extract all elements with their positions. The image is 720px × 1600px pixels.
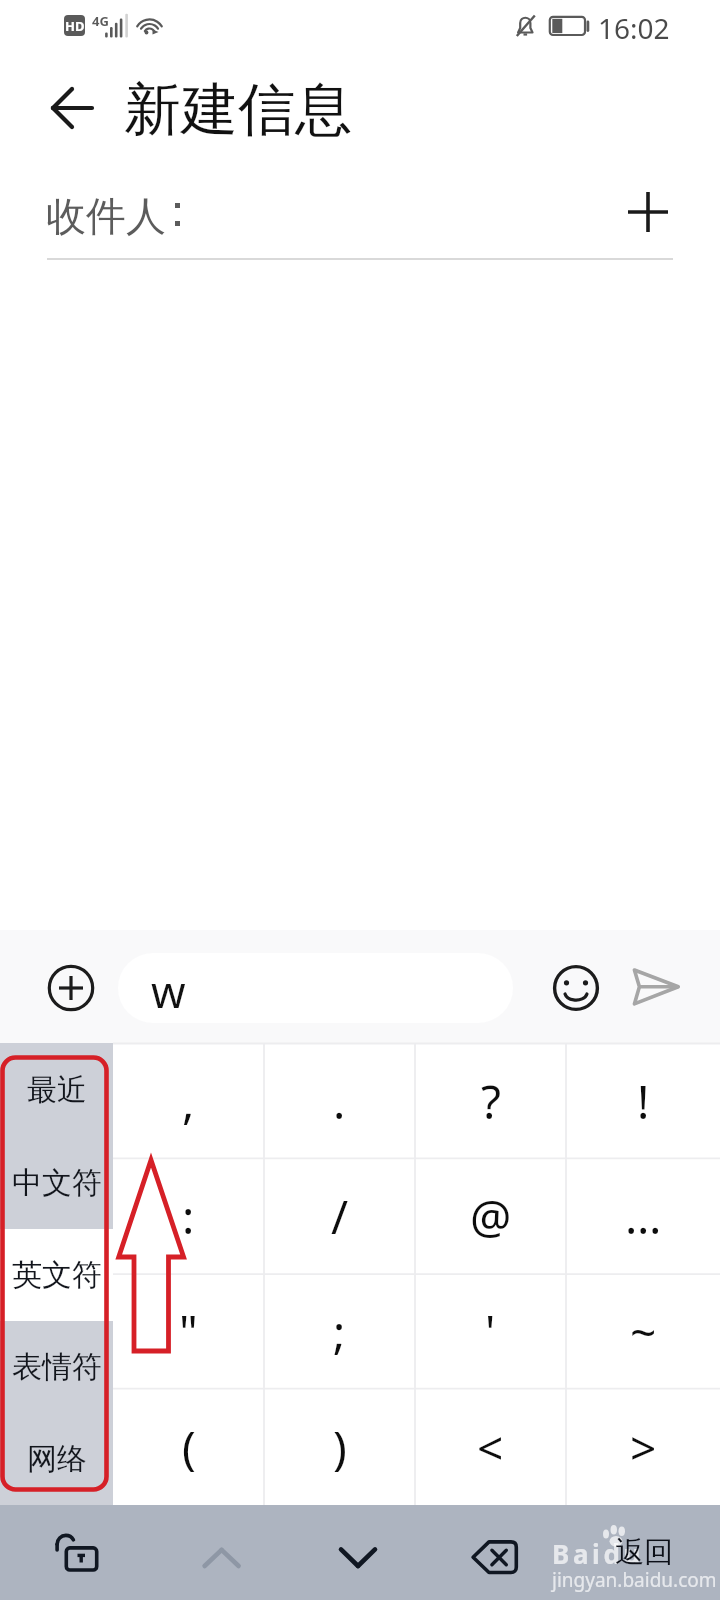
button[interactable]: 英文符 bbox=[0, 1229, 113, 1321]
button[interactable]: 最近 bbox=[0, 1043, 113, 1136]
staticText: jingyan.baidu.com bbox=[552, 1567, 717, 1593]
button[interactable]: @ bbox=[415, 1158, 566, 1274]
staticText: 英文符 bbox=[12, 1256, 102, 1294]
staticText: Baidu bbox=[552, 1536, 644, 1571]
staticText: , bbox=[182, 1070, 195, 1133]
staticText: . bbox=[333, 1070, 346, 1133]
staticText: 返回 bbox=[615, 1534, 673, 1571]
staticText: HD bbox=[65, 17, 85, 35]
staticText: 16:02 bbox=[598, 9, 670, 47]
button[interactable]: ! bbox=[566, 1044, 720, 1159]
staticText: … bbox=[625, 1185, 662, 1248]
button[interactable]: Back bbox=[24, 76, 88, 140]
button[interactable]: Send bbox=[628, 964, 684, 1006]
staticText: > bbox=[630, 1416, 657, 1479]
staticText: ; bbox=[333, 1300, 346, 1363]
staticText: ~ bbox=[630, 1300, 657, 1363]
staticText: ) bbox=[333, 1416, 347, 1479]
staticText: 4G bbox=[92, 12, 109, 30]
button[interactable]: Unlock bbox=[37, 1510, 117, 1590]
button[interactable]: 网络 bbox=[0, 1413, 113, 1505]
staticText: / bbox=[331, 1185, 349, 1248]
button[interactable]: Add recipient bbox=[608, 172, 688, 252]
button[interactable]: 表情符 bbox=[0, 1321, 113, 1413]
button[interactable]: Emoji bbox=[549, 961, 603, 1015]
staticText: ? bbox=[481, 1070, 501, 1133]
button[interactable]: < bbox=[415, 1389, 566, 1505]
button[interactable]: … bbox=[566, 1158, 720, 1274]
staticText: < bbox=[477, 1416, 504, 1479]
button[interactable]: Delete bbox=[455, 1510, 535, 1590]
button[interactable]: ; bbox=[264, 1274, 415, 1388]
staticText: 新建信息 bbox=[124, 74, 352, 146]
button[interactable]: 返回 bbox=[614, 1533, 674, 1571]
staticText: ( bbox=[182, 1416, 196, 1479]
button[interactable]: : bbox=[113, 1158, 264, 1274]
button[interactable]: ) bbox=[264, 1389, 415, 1505]
button[interactable]: ? bbox=[415, 1044, 566, 1159]
button[interactable]: ' bbox=[415, 1274, 566, 1388]
button[interactable]: , bbox=[113, 1044, 264, 1159]
button[interactable]: / bbox=[264, 1158, 415, 1274]
button[interactable]: 收件人 bbox=[0, 170, 720, 260]
staticText: 表情符 bbox=[12, 1348, 102, 1386]
button[interactable]: Add attachment bbox=[40, 957, 102, 1019]
staticText: : bbox=[182, 1185, 195, 1248]
staticText: ! bbox=[637, 1070, 650, 1133]
button[interactable]: w bbox=[118, 953, 513, 1023]
staticText: 收件人 bbox=[46, 191, 166, 241]
button[interactable]: Previous page bbox=[181, 1510, 261, 1590]
button[interactable]: ~ bbox=[566, 1274, 720, 1388]
staticText: w bbox=[151, 961, 186, 1021]
staticText: 最近 bbox=[27, 1071, 87, 1109]
button[interactable]: > bbox=[566, 1389, 720, 1505]
staticText: " bbox=[179, 1300, 198, 1363]
staticText: 网络 bbox=[27, 1440, 87, 1478]
button[interactable]: . bbox=[264, 1044, 415, 1159]
button[interactable]: Next page bbox=[318, 1510, 398, 1590]
button[interactable]: " bbox=[113, 1274, 264, 1388]
staticText: ' bbox=[485, 1300, 496, 1363]
button[interactable]: 中文符 bbox=[0, 1136, 113, 1229]
staticText: @ bbox=[470, 1185, 512, 1248]
staticText: 中文符 bbox=[12, 1164, 102, 1202]
button[interactable]: ( bbox=[113, 1389, 264, 1505]
